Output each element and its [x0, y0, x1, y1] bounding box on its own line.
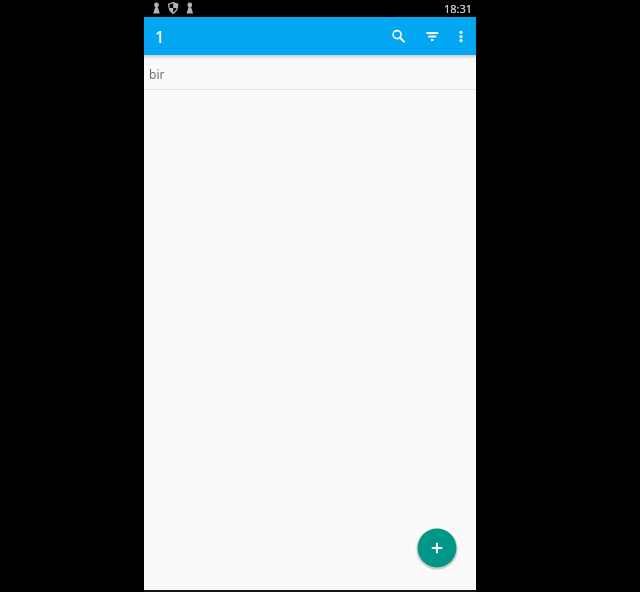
button[interactable]	[445, 17, 476, 55]
button[interactable]: bir	[144, 59, 476, 89]
staticText: 18:31	[444, 1, 473, 16]
staticText: bir	[149, 66, 165, 82]
button[interactable]	[377, 17, 411, 55]
staticText: 1	[155, 25, 165, 48]
button[interactable]	[415, 526, 459, 570]
button[interactable]	[411, 17, 445, 55]
